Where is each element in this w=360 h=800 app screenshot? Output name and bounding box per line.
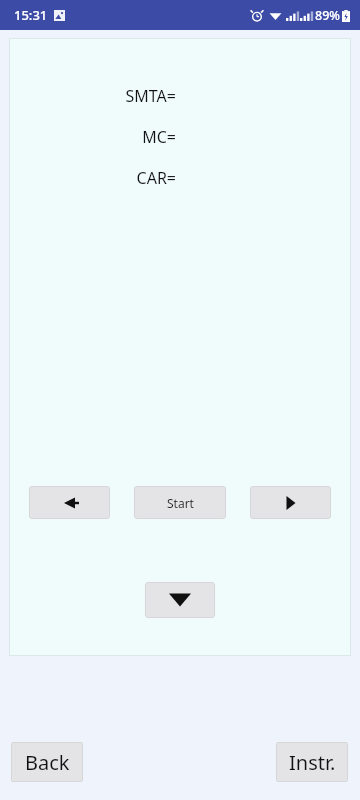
staticText: 15:31 [14,6,48,24]
staticText: MC= [142,126,176,148]
button[interactable]: Previous [29,486,110,519]
staticText: SMTA= [125,85,176,107]
button[interactable]: Start [134,486,226,519]
button[interactable]: Down [145,582,215,618]
staticText: Instr. [289,749,336,776]
staticText: Back [25,749,70,776]
staticText: 89% [315,7,340,24]
staticText: Start [167,495,194,511]
button[interactable]: Next [250,486,331,519]
staticText: CAR= [136,167,176,189]
button[interactable]: Instr. [276,742,348,782]
button[interactable]: Back [11,742,83,782]
